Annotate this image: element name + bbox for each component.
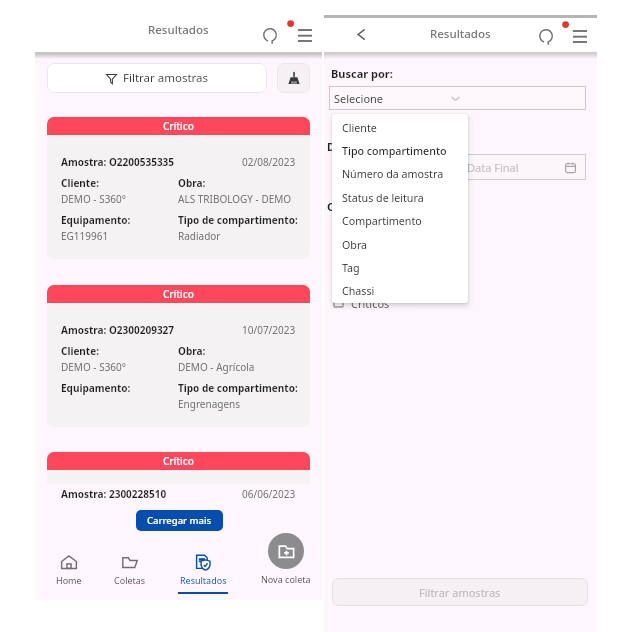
button[interactable]: Data Final: [433, 154, 586, 180]
staticText: Resultados: [430, 26, 491, 42]
staticText: Amostra: O2200535335: [61, 155, 175, 169]
staticText: Radiador: [178, 229, 221, 243]
button[interactable]: Selecione: [329, 86, 586, 110]
staticText: Data Final: [467, 160, 519, 175]
staticText: DEMO - S360°: [61, 360, 127, 374]
staticText: Crítico: [163, 119, 194, 133]
staticText: ALS TRIBOLOGY - DEMO: [178, 192, 292, 206]
button[interactable]: Home: [39, 554, 99, 586]
button[interactable]: Voltar: [348, 21, 375, 48]
button[interactable]: Tipo compartimento: [332, 140, 468, 163]
staticText: Carregar mais: [147, 514, 212, 527]
staticText: Amostra: 2300228510: [61, 487, 167, 500]
staticText: DEMO - Agrícola: [178, 360, 255, 374]
staticText: Equipamento:: [61, 381, 131, 395]
staticText: Resultados: [148, 22, 209, 38]
staticText: DEMO - S360°: [61, 192, 127, 206]
button[interactable]: Filtrar amostras: [47, 63, 267, 93]
button[interactable]: Menu: [288, 14, 316, 42]
button[interactable]: Obra: [332, 234, 468, 257]
staticText: Home: [56, 574, 82, 586]
button[interactable]: Atualizar: [256, 21, 283, 48]
staticText: Buscar por:: [331, 66, 393, 81]
staticText: Nova coleta: [261, 573, 311, 585]
button[interactable]: Filtrar amostras: [332, 578, 588, 606]
staticText: Equipamento:: [61, 213, 131, 227]
staticText: Número da amostra: [342, 167, 444, 182]
staticText: Amostra: O2300209327: [61, 323, 175, 337]
staticText: Obra:: [178, 344, 206, 358]
button[interactable]: Resultados: [173, 554, 233, 594]
button[interactable]: Tag: [332, 257, 468, 280]
staticText: Tag: [342, 261, 360, 276]
staticText: Outros filtros:: [327, 199, 404, 214]
staticText: 06/06/2023: [242, 487, 296, 500]
staticText: Chassi: [342, 284, 375, 299]
staticText: Crítico: [163, 287, 194, 301]
button[interactable]: Atualizar: [532, 22, 559, 49]
staticText: Cliente:: [61, 344, 99, 358]
staticText: Obra: [342, 238, 368, 253]
staticText: Obra:: [178, 176, 206, 190]
staticText: Filtrar amostras: [123, 70, 209, 86]
button[interactable]: Coletas: [100, 554, 160, 586]
button[interactable]: Status de leitura: [332, 187, 468, 210]
staticText: Tipo de compartimento:: [178, 213, 298, 227]
staticText: Selecione: [334, 91, 384, 106]
staticText: Compartimento: [342, 214, 422, 229]
staticText: 10/07/2023: [242, 323, 296, 337]
button[interactable]: Chassi: [332, 280, 468, 303]
staticText: Crítico: [163, 454, 194, 468]
staticText: Cliente: [342, 121, 377, 136]
staticText: Data Inicial:: [327, 139, 393, 154]
button[interactable]: Limpar filtros: [277, 63, 310, 93]
staticText: Coletas: [114, 574, 146, 586]
button[interactable]: Menu: [563, 15, 591, 43]
staticText: Resultados: [180, 574, 227, 586]
staticText: Tipo de compartimento:: [178, 381, 298, 395]
button[interactable]: Nova coleta: [256, 533, 316, 585]
button[interactable]: Número da amostra: [332, 163, 468, 186]
button[interactable]: Carregar mais: [136, 510, 223, 531]
staticText: Críticos: [351, 296, 390, 311]
staticText: Filtrar amostras: [419, 585, 501, 600]
staticText: EG119961: [61, 229, 109, 243]
staticText: Status de leitura: [342, 191, 424, 206]
button[interactable]: Compartimento: [332, 210, 468, 233]
staticText: Cliente:: [61, 176, 99, 190]
button[interactable]: Cliente: [332, 117, 468, 140]
staticText: Tipo compartimento: [342, 144, 447, 159]
staticText: Engrenagens: [178, 397, 241, 411]
staticText: 02/08/2023: [242, 155, 296, 169]
